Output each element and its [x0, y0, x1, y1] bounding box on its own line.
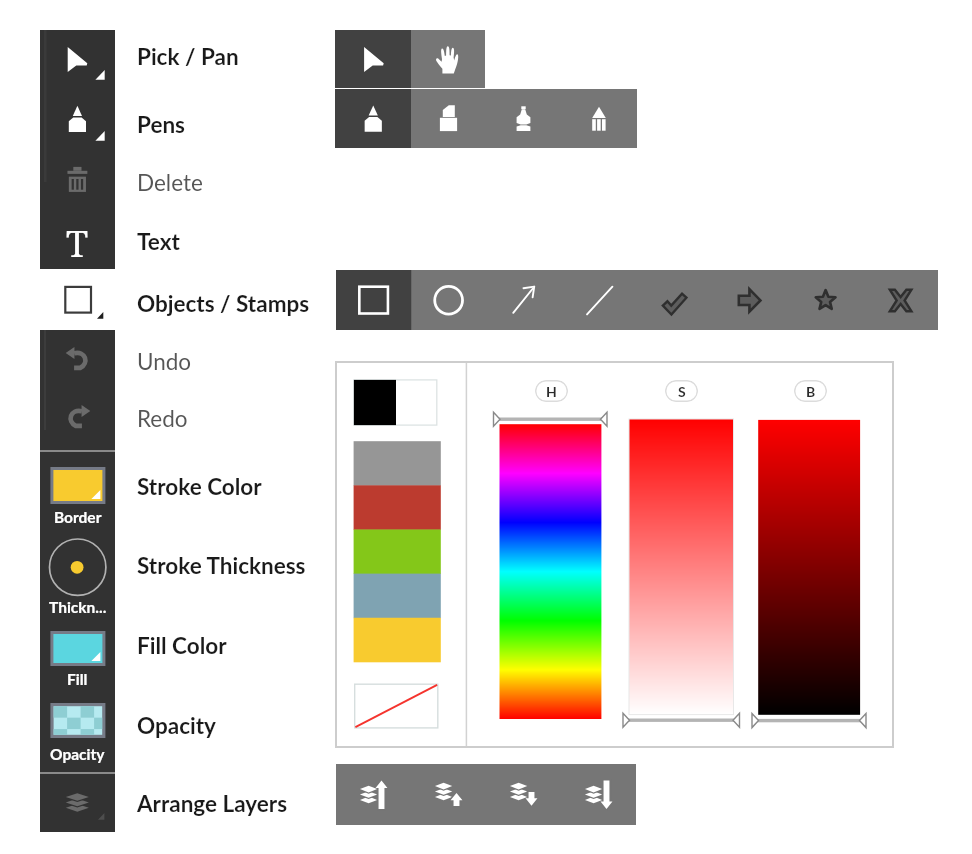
button[interactable]: Pick [335, 30, 411, 88]
button[interactable]: Text [137, 224, 180, 258]
button[interactable]: Undo [137, 344, 192, 378]
staticText: Opacity [50, 745, 105, 764]
staticText: Fill [67, 670, 88, 689]
staticText: Stroke Thickness [137, 552, 306, 579]
button[interactable]: Rectangle [336, 270, 411, 330]
button[interactable]: Check mark [637, 270, 712, 330]
button[interactable]: Marker pen [335, 89, 411, 148]
button[interactable]: Bring forward [411, 764, 486, 825]
staticText: Undo [137, 348, 192, 375]
button[interactable]: Fill Color [137, 628, 227, 662]
button[interactable]: Pan [411, 30, 485, 88]
staticText: Delete [137, 169, 203, 196]
staticText: H [546, 383, 557, 400]
button[interactable]: Stroke Color [137, 469, 262, 503]
staticText: Arrange Layers [137, 790, 288, 817]
button[interactable]: Objects / Stamps [137, 286, 310, 320]
button[interactable]: Send to back [561, 764, 636, 825]
staticText: Opacity [137, 712, 216, 739]
button[interactable]: Line [562, 270, 637, 330]
button[interactable]: Ellipse [411, 270, 486, 330]
button[interactable]: Arrange Layers [137, 786, 288, 820]
staticText: Border [54, 508, 102, 527]
button[interactable]: Block arrow [712, 270, 787, 330]
button[interactable]: Arrange Layers [40, 774, 115, 832]
button[interactable]: Fine pen [486, 89, 561, 148]
staticText: Fill Color [137, 632, 227, 659]
button[interactable]: Stroke Thickness [137, 548, 306, 582]
staticText: Text [137, 228, 180, 255]
staticText: Thickn... [49, 598, 107, 617]
staticText: B [806, 383, 816, 400]
staticText: Redo [137, 405, 188, 432]
button[interactable]: Opacity [137, 708, 216, 742]
staticText: Objects / Stamps [137, 290, 310, 317]
button[interactable]: Pens [137, 107, 185, 141]
button[interactable]: Delete [137, 165, 203, 199]
button[interactable]: Cross out [863, 270, 938, 330]
staticText: S [678, 383, 686, 400]
button[interactable] [40, 269, 115, 330]
button[interactable]: Pick / Pan [137, 39, 239, 73]
staticText: T [66, 219, 89, 259]
button[interactable]: Arrow line [487, 270, 562, 330]
staticText: Stroke Color [137, 473, 262, 500]
staticText: Pick / Pan [137, 43, 239, 70]
button[interactable]: Redo [137, 401, 188, 435]
button[interactable]: Send backward [486, 764, 561, 825]
button[interactable]: Highlighter [411, 89, 486, 148]
staticText: Pens [137, 111, 185, 138]
button[interactable]: Star [788, 270, 863, 330]
button[interactable]: Pencil [561, 89, 637, 148]
button[interactable]: Bring to front [336, 764, 411, 825]
